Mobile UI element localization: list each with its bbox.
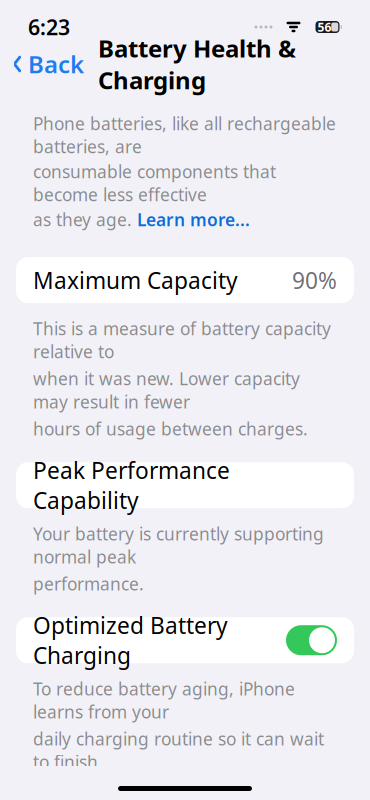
- staticText: Phone batteries, like all rechargeable b…: [33, 112, 336, 158]
- staticText: Back: [28, 48, 84, 80]
- staticText: Maximum Capacity: [33, 265, 238, 295]
- staticText: consumable components that become less e…: [33, 160, 276, 206]
- staticText: Peak Performance Capability: [33, 455, 230, 515]
- staticText: hours of usage between charges.: [33, 417, 308, 440]
- staticText: This is a measure of battery capacity re…: [33, 317, 331, 363]
- button[interactable]: Optimized Battery Charging: [16, 617, 354, 663]
- button[interactable]: Peak Performance Capability: [16, 462, 354, 508]
- staticText: Learn more...: [137, 208, 250, 231]
- staticText: Optimized Battery Charging: [33, 610, 228, 670]
- button[interactable]: Back: [0, 42, 84, 86]
- staticText: 6:23: [28, 13, 70, 41]
- staticText: Battery Health & Charging: [98, 32, 296, 96]
- staticText: Your battery is currently supporting nor…: [33, 522, 324, 568]
- button[interactable]: Maximum Capacity: [16, 257, 354, 303]
- button[interactable]: Learn more...: [137, 208, 250, 231]
- staticText: performance.: [33, 572, 144, 595]
- staticText: when it was new. Lower capacity may resu…: [33, 367, 300, 413]
- staticText: as they age.: [33, 208, 132, 231]
- staticText: 56: [317, 19, 331, 35]
- staticText: daily charging routine so it can wait to…: [33, 727, 324, 773]
- staticText: To reduce battery aging, iPhone learns f…: [33, 677, 295, 723]
- staticText: charging past 80% until you need to use …: [33, 777, 329, 800]
- staticText: 90%: [292, 265, 337, 295]
